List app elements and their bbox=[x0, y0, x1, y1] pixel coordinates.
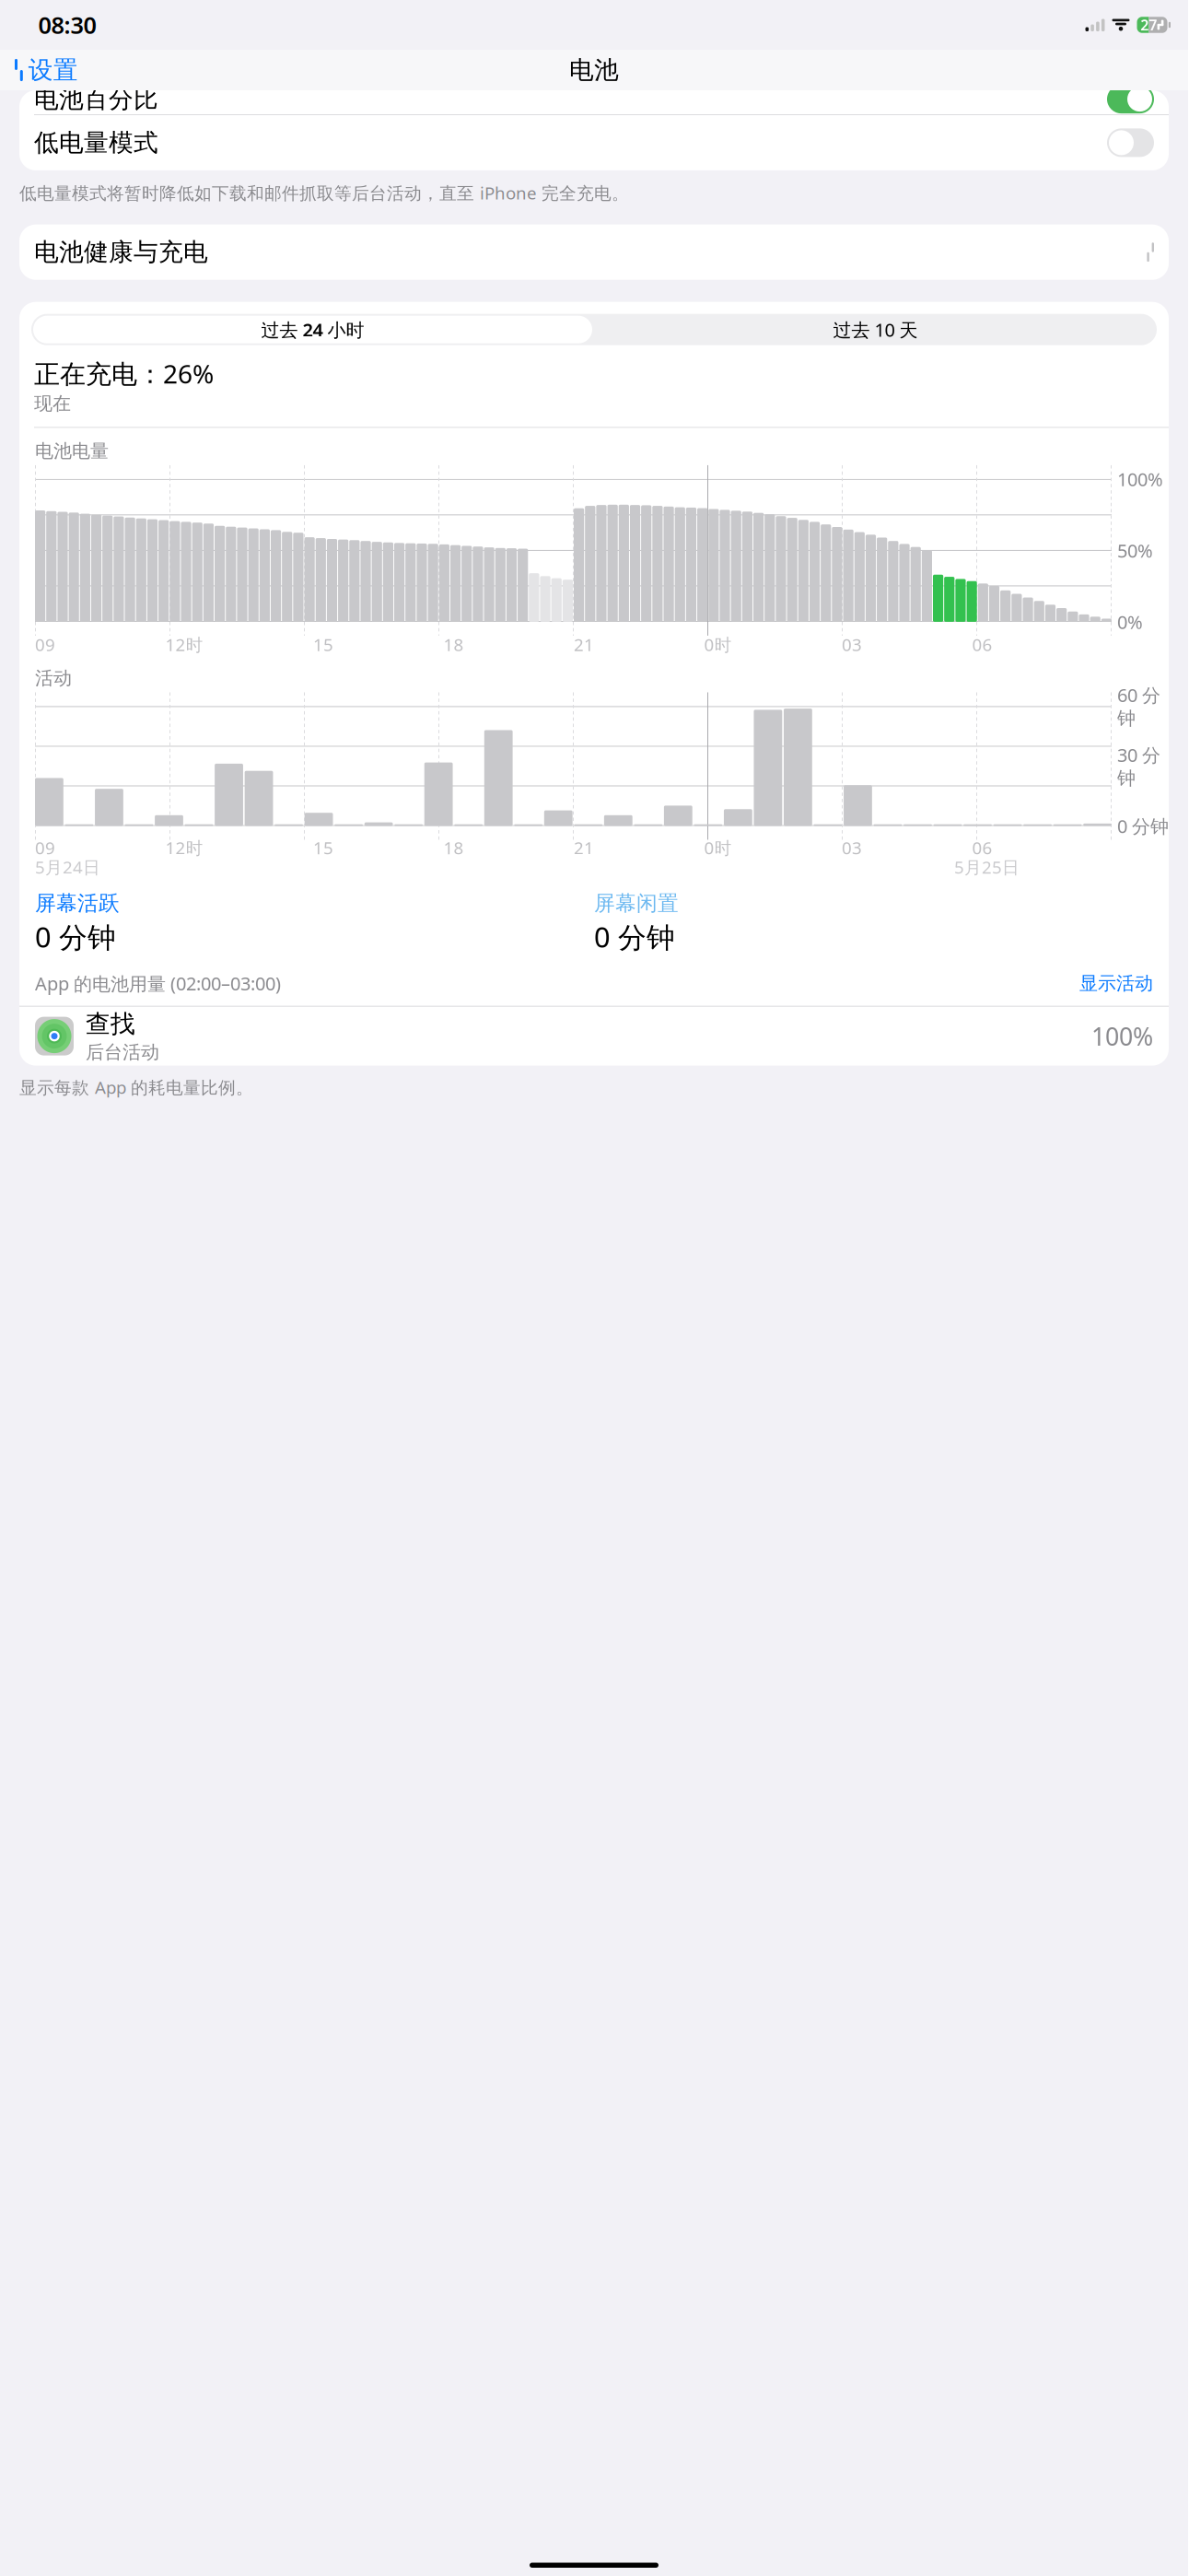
staticText: 低电量模式 bbox=[34, 128, 158, 158]
staticText: 电池 bbox=[569, 55, 619, 85]
staticText: 0% bbox=[1117, 610, 1143, 634]
staticText: 电池百分比 bbox=[34, 84, 158, 114]
staticText: 设置 bbox=[28, 55, 78, 85]
staticText: 0 分钟 bbox=[35, 918, 116, 955]
staticText: 15 bbox=[313, 633, 333, 656]
staticText: 过去 10 天 bbox=[833, 317, 918, 342]
staticText: 0 分钟 bbox=[594, 918, 675, 955]
staticText: 低电量模式将暂时降低如下载和邮件抓取等后台活动，直至 iPhone 完全充电。 bbox=[19, 181, 629, 204]
staticText: 屏幕活跃 bbox=[35, 890, 120, 916]
staticText: 现在 bbox=[34, 392, 71, 415]
staticText: 27 bbox=[1140, 15, 1157, 35]
button[interactable]: 过去 10 天 bbox=[594, 314, 1157, 345]
staticText: 08:30 bbox=[38, 9, 96, 40]
button[interactable]: 查找 bbox=[19, 1007, 1169, 1066]
staticText: 0 分钟 bbox=[1117, 814, 1169, 838]
staticText: 12时 bbox=[165, 633, 203, 656]
staticText: 5月24日 bbox=[35, 856, 100, 878]
button[interactable]: 设置 bbox=[7, 48, 85, 93]
staticText: 5月25日 bbox=[954, 856, 1020, 878]
staticText: App 的电池用量 (02:00–03:00) bbox=[35, 971, 281, 996]
staticText: 过去 24 小时 bbox=[261, 317, 364, 342]
staticText: 0时 bbox=[704, 836, 732, 859]
staticText: 100% bbox=[1117, 467, 1163, 491]
staticText: 活动 bbox=[35, 667, 72, 690]
staticText: 后台活动 bbox=[86, 1041, 159, 1063]
staticText: 15 bbox=[313, 836, 333, 859]
staticText: 06 bbox=[972, 836, 992, 859]
staticText: 18 bbox=[443, 836, 464, 859]
button[interactable]: 电池健康与充电 bbox=[19, 225, 1169, 280]
staticText: 03 bbox=[842, 836, 862, 859]
staticText: 18 bbox=[443, 633, 464, 656]
staticText: 电池健康与充电 bbox=[34, 237, 208, 267]
staticText: 0时 bbox=[704, 633, 732, 656]
staticText: 屏幕闲置 bbox=[594, 890, 679, 916]
staticText: 21 bbox=[574, 633, 594, 656]
staticText: 12时 bbox=[165, 836, 203, 859]
button[interactable]: 显示活动 bbox=[1079, 972, 1153, 995]
staticText: 09 bbox=[35, 836, 55, 859]
staticText: 21 bbox=[574, 836, 594, 859]
button[interactable]: 过去 24 小时 bbox=[31, 314, 594, 345]
staticText: 50% bbox=[1117, 538, 1153, 563]
staticText: 30 分钟 bbox=[1117, 742, 1160, 790]
button[interactable]: 低电量模式 bbox=[19, 115, 1169, 170]
staticText: 显示活动 bbox=[1079, 972, 1153, 995]
staticText: 100% bbox=[1091, 1020, 1153, 1052]
staticText: 正在充电：26% bbox=[34, 356, 214, 391]
staticText: 09 bbox=[35, 633, 55, 656]
staticText: 60 分钟 bbox=[1117, 683, 1160, 730]
staticText: 03 bbox=[842, 633, 862, 656]
button[interactable]: 电池百分比 bbox=[19, 90, 1169, 114]
staticText: 06 bbox=[972, 633, 992, 656]
staticText: 查找 bbox=[86, 1009, 135, 1039]
staticText: 电池电量 bbox=[35, 440, 109, 462]
staticText: 显示每款 App 的耗电量比例。 bbox=[19, 1076, 253, 1099]
